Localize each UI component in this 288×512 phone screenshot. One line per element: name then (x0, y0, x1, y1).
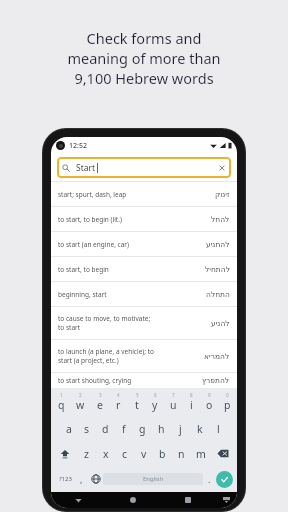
staticText: 7 (172, 392, 175, 398)
button[interactable]: , (75, 469, 88, 489)
button[interactable]: 2 (71, 388, 90, 416)
button[interactable]: d (96, 416, 114, 441)
staticText: w (76, 398, 85, 412)
staticText: to start, to begin (lit.) (58, 215, 207, 224)
staticText: להתחיל (205, 265, 230, 274)
staticText: a (66, 422, 72, 436)
staticText: p (224, 398, 231, 412)
button[interactable]: . (203, 469, 216, 489)
button[interactable]: 9 (200, 388, 218, 416)
staticText: ?123 (59, 475, 72, 483)
button[interactable]: start; spurt, dash, leap (51, 182, 237, 206)
button[interactable]: to start (an engine, car) (51, 232, 237, 256)
staticText: v (141, 447, 147, 461)
button[interactable]: 7 (164, 388, 182, 416)
staticText: t (135, 398, 139, 412)
button[interactable]: Home (105, 492, 160, 508)
button[interactable]: Shift (53, 441, 77, 466)
staticText: 9,100 Hebrew words (10, 68, 278, 88)
button[interactable]: k (190, 416, 209, 441)
button[interactable]: a (60, 416, 78, 441)
staticText: beginning, start (58, 290, 202, 299)
button[interactable]: m (191, 441, 210, 466)
staticText: z (84, 447, 89, 461)
staticText: 5 (136, 392, 139, 398)
staticText: to start (an engine, car) (58, 240, 202, 249)
staticText: 9 (208, 392, 211, 398)
staticText: להניע (211, 319, 230, 328)
button[interactable]: c (115, 441, 134, 466)
button[interactable]: to launch (a plane, a vehicle); to start… (51, 340, 237, 372)
button[interactable]: 5 (128, 388, 146, 416)
button[interactable]: to start, to begin (51, 257, 237, 281)
button[interactable]: h (152, 416, 171, 441)
staticText: q (58, 398, 65, 412)
button[interactable]: j (171, 416, 190, 441)
button[interactable]: Change keyboard language (88, 469, 103, 489)
button[interactable]: Search (57, 157, 231, 178)
button[interactable]: 3 (90, 388, 109, 416)
staticText: 2 (79, 392, 82, 398)
staticText: English (143, 475, 164, 483)
button[interactable]: Recent apps (160, 492, 215, 508)
staticText: start; spurt, dash, leap (58, 190, 211, 199)
staticText: l (217, 422, 220, 436)
staticText: to start, to begin (58, 265, 201, 274)
button[interactable]: to start, to begin (lit.) (51, 207, 237, 231)
button[interactable]: Back (51, 492, 105, 508)
button[interactable]: Search (216, 471, 233, 488)
button[interactable]: Backspace (210, 441, 235, 466)
staticText: f (122, 422, 126, 436)
button[interactable]: to cause to move, to motivate; to start (51, 307, 237, 339)
button[interactable]: l (209, 416, 228, 441)
button[interactable]: 0 (218, 388, 236, 416)
staticText: y (152, 398, 158, 412)
staticText: j (179, 422, 182, 436)
button[interactable]: x (96, 441, 115, 466)
staticText: 1 (60, 392, 63, 398)
button[interactable]: s (78, 416, 96, 441)
button[interactable]: f (114, 416, 133, 441)
button[interactable]: to start shouting, crying (51, 373, 237, 388)
button[interactable]: English (103, 473, 203, 485)
staticText: b (159, 447, 166, 461)
button[interactable]: 4 (109, 388, 128, 416)
button[interactable]: 8 (182, 388, 200, 416)
staticText: 4 (117, 392, 120, 398)
staticText: 0 (226, 392, 229, 398)
staticText: להתפרץ (202, 376, 230, 385)
staticText: k (197, 422, 203, 436)
staticText: h (158, 422, 165, 436)
button[interactable]: b (153, 441, 172, 466)
staticText: c (122, 447, 128, 461)
staticText: Start (76, 162, 96, 174)
staticText: 3 (99, 392, 102, 398)
button[interactable]: n (172, 441, 191, 466)
button[interactable]: Hide keyboard (215, 492, 237, 508)
button[interactable]: v (134, 441, 153, 466)
staticText: to launch (a plane, a vehicle); to start… (58, 347, 200, 365)
button[interactable]: Clear search (218, 164, 226, 172)
staticText: d (102, 422, 109, 436)
staticText: 12:52 (69, 141, 87, 151)
staticText: 6 (154, 392, 157, 398)
staticText: e (97, 398, 103, 412)
staticText: g (139, 422, 146, 436)
staticText: , (80, 473, 83, 485)
staticText: o (206, 398, 213, 412)
staticText: להחל (211, 215, 230, 224)
button[interactable]: 6 (146, 388, 164, 416)
staticText: r (116, 398, 121, 412)
staticText: m (196, 447, 206, 461)
staticText: n (178, 447, 185, 461)
button[interactable]: beginning, start (51, 282, 237, 306)
staticText: . (208, 473, 211, 485)
button[interactable]: 1 (52, 388, 71, 416)
button[interactable]: g (133, 416, 152, 441)
staticText: meaning of more than (10, 48, 278, 68)
other: Search (62, 164, 70, 172)
staticText: התחלה (206, 290, 230, 299)
staticText: u (170, 398, 177, 412)
button[interactable]: z (77, 441, 96, 466)
button[interactable]: ?123 (55, 469, 75, 489)
